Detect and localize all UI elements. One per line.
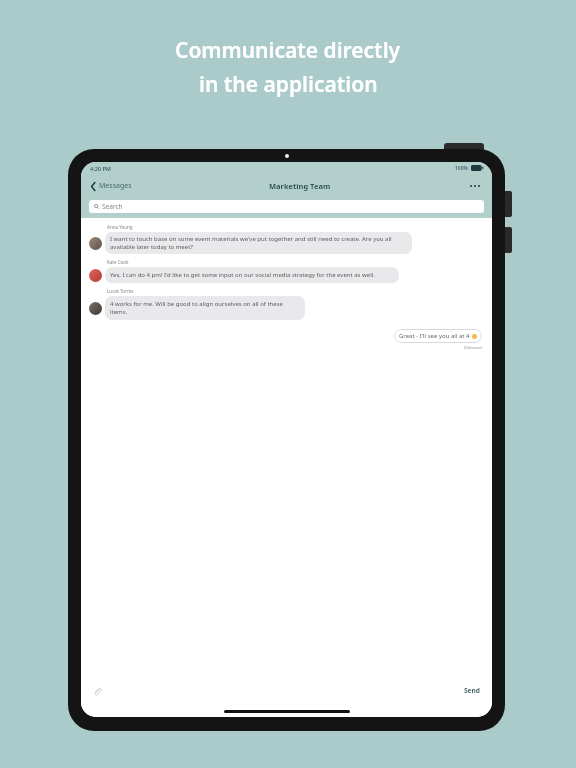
- button[interactable]: 4 works for me. Will be good to align ou…: [105, 296, 305, 320]
- staticText: 4 works for me. Will be good to align ou…: [110, 300, 300, 316]
- staticText: Yes, I can do 4 pm! I'd like to get some…: [110, 271, 375, 279]
- button[interactable]: Yes, I can do 4 pm! I'd like to get some…: [105, 267, 399, 283]
- staticText: Great - I'll see you all at 4: [399, 332, 472, 340]
- staticText: Anna Young: [107, 224, 133, 230]
- button[interactable]: I want to touch base on some event mater…: [105, 232, 412, 254]
- button[interactable]: Messages: [89, 178, 134, 194]
- staticText: Delivered: [464, 345, 482, 350]
- staticText: Lucas Torres: [107, 288, 134, 294]
- staticText: 4:20 PM: [90, 165, 111, 172]
- button[interactable]: Send: [462, 685, 482, 696]
- staticText: 100%: [455, 165, 468, 172]
- staticText: Marketing Team: [269, 181, 331, 191]
- staticText: Messages: [99, 181, 132, 191]
- staticText: Kate Cook: [107, 259, 129, 265]
- staticText: Search: [102, 202, 123, 211]
- button[interactable]: Great - I'll see you all at 4: [394, 329, 482, 343]
- staticText: Communicate directly: [175, 36, 401, 65]
- staticText: I want to touch base on some event mater…: [110, 235, 407, 251]
- staticText: Send: [464, 686, 480, 695]
- button[interactable]: More options: [466, 181, 484, 191]
- staticText: in the application: [199, 70, 378, 99]
- button[interactable]: Attach file: [91, 685, 104, 698]
- button[interactable]: Search: [89, 200, 484, 213]
